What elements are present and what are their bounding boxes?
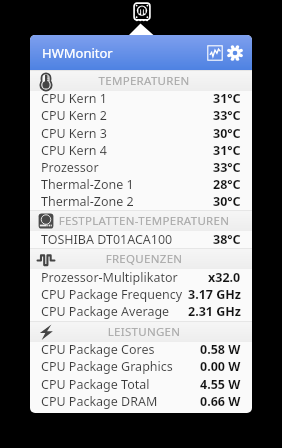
button[interactable]: TOSHIBA DT01ACA100 <box>30 231 252 248</box>
staticText: CPU Kern 2 <box>41 107 107 124</box>
button[interactable]: CPU Kern 3 <box>30 125 252 142</box>
staticText: 2.31 GHz <box>188 303 241 320</box>
button[interactable]: CPU Package Total <box>30 376 252 393</box>
button[interactable]: Prozessor-Multiplikator <box>30 269 252 286</box>
button[interactable]: CPU Kern 2 <box>30 107 252 124</box>
staticText: FESTPLATTEN-TEMPERATUREN <box>36 213 252 229</box>
staticText: TEMPERATUREN <box>36 73 252 89</box>
staticText: TOSHIBA DT01ACA100 <box>41 231 173 248</box>
staticText: CPU Package Average <box>41 303 170 320</box>
staticText: 33°C <box>213 159 241 176</box>
button[interactable]: CPU Package Graphics <box>30 358 252 375</box>
button[interactable]: CPU Package Frequency <box>30 286 252 303</box>
staticText: 30°C <box>213 125 241 142</box>
staticText: 28°C <box>213 176 241 193</box>
staticText: FREQUENZEN <box>36 251 252 267</box>
staticText: HWMonitor <box>42 44 113 62</box>
staticText: CPU Package Cores <box>41 341 155 358</box>
staticText: Thermal-Zone 1 <box>41 176 134 193</box>
staticText: 33°C <box>213 107 241 124</box>
button[interactable]: Settings <box>227 45 243 61</box>
button[interactable]: CPU Kern 4 <box>30 142 252 159</box>
button[interactable]: Prozessor <box>30 159 252 176</box>
staticText: CPU Package DRAM <box>41 393 158 410</box>
button[interactable]: CPU Package Average <box>30 303 252 320</box>
button[interactable]: Graphs <box>207 45 223 61</box>
staticText: 3.17 GHz <box>188 286 241 303</box>
staticText: 0.58 W <box>200 341 241 358</box>
staticText: 0.00 W <box>200 358 241 375</box>
staticText: CPU Kern 1 <box>41 90 107 107</box>
staticText: CPU Kern 4 <box>41 142 107 159</box>
staticText: CPU Package Graphics <box>41 358 173 375</box>
staticText: Prozessor <box>41 159 99 176</box>
staticText: CPU Package Frequency <box>41 286 183 303</box>
staticText: LEISTUNGEN <box>36 324 252 340</box>
button[interactable]: Thermal-Zone 2 <box>30 193 252 210</box>
button[interactable]: CPU Kern 1 <box>30 90 252 107</box>
button[interactable]: CPU Package Cores <box>30 341 252 358</box>
staticText: Prozessor-Multiplikator <box>41 269 178 286</box>
staticText: x32.0 <box>208 269 241 286</box>
button[interactable]: HWMonitor <box>30 35 252 70</box>
button[interactable]: HWMonitor menu bar icon <box>131 2 153 21</box>
staticText: 31°C <box>213 90 241 107</box>
staticText: Thermal-Zone 2 <box>41 193 134 210</box>
staticText: 38°C <box>213 231 241 248</box>
staticText: CPU Kern 3 <box>41 125 107 142</box>
button[interactable]: CPU Package DRAM <box>30 393 252 410</box>
staticText: CPU Package Total <box>41 376 150 393</box>
staticText: 4.55 W <box>200 376 241 393</box>
button[interactable]: Thermal-Zone 1 <box>30 176 252 193</box>
staticText: 30°C <box>213 193 241 210</box>
staticText: 0.66 W <box>200 393 241 410</box>
staticText: 31°C <box>213 142 241 159</box>
